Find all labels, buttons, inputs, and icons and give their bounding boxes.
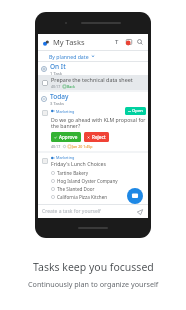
- button[interactable]: Reject: [84, 132, 109, 142]
- staticText: By planned date: [49, 53, 89, 60]
- staticText: Today: [50, 92, 69, 101]
- staticText: California Pizza Kitchen: [57, 194, 108, 200]
- button[interactable]: Notifications: [124, 38, 133, 47]
- staticText: Reject: [92, 134, 106, 140]
- staticText: Hog Island Oyster Company: [57, 178, 118, 184]
- staticText: Back: [67, 84, 75, 89]
- button[interactable]: By planned date: [38, 51, 148, 61]
- button[interactable]: [42, 110, 48, 116]
- button[interactable]: Text format: [113, 38, 121, 46]
- staticText: T: [115, 38, 119, 46]
- button[interactable]: Search: [136, 38, 144, 46]
- button[interactable]: Menu: [42, 39, 49, 46]
- button[interactable]: Open: [125, 107, 146, 115]
- button[interactable]: Create a task for yourself: [38, 205, 148, 218]
- staticText: 3 Tasks: [50, 101, 65, 105]
- staticText: Create a task for yourself: [42, 208, 101, 215]
- staticText: Jan 20 1:45p: [72, 144, 93, 149]
- button[interactable]: Prepare the technical data sheet: [38, 75, 148, 90]
- button[interactable]: Open chat: [127, 188, 143, 204]
- staticText: Continuously plan to organize yourself: [28, 279, 159, 289]
- staticText: The Slanted Door: [57, 186, 95, 192]
- button[interactable]: The Slanted Door: [51, 185, 145, 193]
- staticText: Marketing: [56, 155, 75, 160]
- button[interactable]: California Pizza Kitchen: [51, 193, 145, 201]
- button[interactable]: Hog Island Oyster Company: [51, 177, 145, 185]
- button[interactable]: Tartine Bakery: [51, 169, 145, 177]
- button[interactable]: Chipotle: [51, 201, 145, 202]
- staticText: Prepare the technical data sheet: [51, 76, 133, 83]
- button[interactable]: On It: [38, 62, 148, 75]
- staticText: 40:17: [51, 84, 61, 89]
- staticText: Approve: [59, 134, 78, 140]
- staticText: 1 Task: [50, 71, 63, 75]
- staticText: Do we go ahead with KLM proposal for the…: [51, 116, 146, 130]
- staticText: Tartine Bakery: [57, 170, 88, 176]
- button[interactable]: [42, 158, 48, 164]
- button[interactable]: Today: [38, 92, 148, 105]
- staticText: Open: [132, 108, 143, 114]
- staticText: My Tasks: [53, 37, 85, 47]
- staticText: Marketing: [56, 109, 75, 114]
- staticText: 40:17: [51, 144, 61, 149]
- button[interactable]: Send: [136, 208, 144, 216]
- staticText: Tasks keep you focussed: [33, 260, 154, 274]
- button[interactable]: Approve: [51, 132, 81, 142]
- staticText: Friday's Lunch Choices: [51, 160, 107, 167]
- staticText: On It: [50, 62, 66, 71]
